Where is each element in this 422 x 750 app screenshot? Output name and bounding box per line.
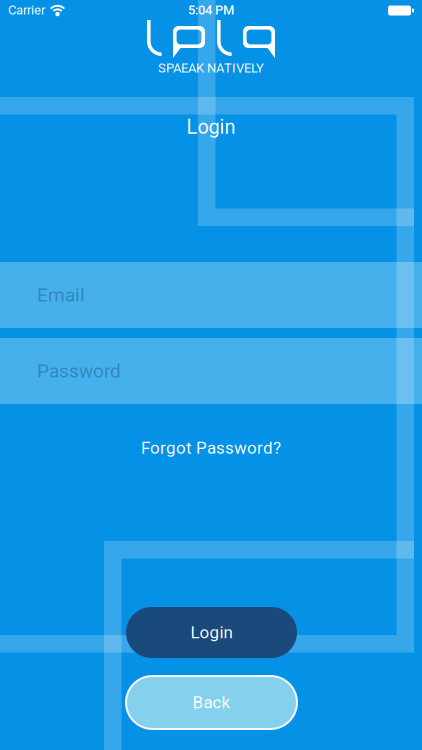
staticText: Login: [186, 115, 235, 139]
button[interactable]: Forgot Password?: [141, 438, 281, 458]
staticText: Forgot Password?: [141, 438, 281, 458]
button[interactable]: Email: [0, 262, 422, 328]
staticText: Login: [190, 622, 232, 642]
staticText: Back: [192, 692, 230, 712]
staticText: Carrier: [8, 2, 45, 18]
button[interactable]: Login: [126, 607, 297, 658]
button[interactable]: Password: [0, 338, 422, 404]
staticText: Email: [37, 284, 85, 306]
staticText: SPAEAK NATIVELY: [158, 60, 264, 76]
staticText: 5:04 PM: [188, 2, 234, 18]
staticText: Password: [37, 360, 121, 382]
button[interactable]: Back: [126, 676, 297, 729]
